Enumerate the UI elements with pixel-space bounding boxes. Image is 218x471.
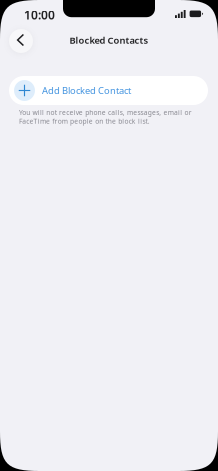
staticText: Add Blocked Contact (42, 84, 131, 97)
staticText: You will not receive phone calls, messag… (19, 108, 192, 126)
staticText: 10:00 (24, 7, 55, 23)
button[interactable]: Back (9, 29, 33, 53)
button[interactable]: Add Blocked Contact (9, 76, 208, 105)
staticText: Blocked Contacts (69, 34, 148, 46)
